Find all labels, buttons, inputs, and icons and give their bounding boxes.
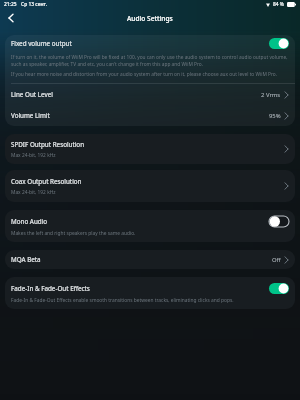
button[interactable]: Coax Output Resolution [5,170,295,202]
button[interactable]: Fixed volume output [5,35,295,51]
button[interactable]: Mono Audio [5,210,295,242]
staticText: Ср 13 сент. [21,1,47,8]
button[interactable]: Back [2,9,20,27]
button[interactable]: MQA Beta [5,250,295,269]
staticText: 84 % [273,1,285,8]
staticText: If turn on it, the volume of WiiM Pro wi… [11,54,293,68]
staticText: Makes the left and right speakers play t… [11,230,136,237]
staticText: Max 24-bit, 192 kHz [11,189,56,196]
staticText: Line Out Level [11,90,261,99]
button[interactable]: Line Out Level [5,84,295,105]
staticText: 21:25 [4,1,17,8]
button[interactable]: Fade-In & Fade-Out Effects [5,277,295,309]
button[interactable]: SPDIF Output Resolution [5,134,295,164]
staticText: Max 24-bit, 192 kHz [11,152,56,159]
button[interactable]: Volume Limit [5,105,295,126]
staticText: Off [272,256,281,264]
staticText: MQA Beta [11,255,272,264]
staticText: Coax Output Resolution [11,177,82,186]
staticText: SPDIF Output Resolution [11,140,85,149]
staticText: Fade-In & Fade-Out Effects [11,284,269,293]
staticText: If you hear more noise and distortion fr… [11,71,278,78]
staticText: Fade-In & Fade-Out Effects enable smooth… [11,297,234,304]
staticText: 2 Vrms [261,91,281,99]
staticText: 95% [269,112,281,120]
staticText: Fixed volume output [11,39,269,48]
staticText: Audio Settings [127,14,173,23]
staticText: Mono Audio [11,217,269,226]
staticText: Volume Limit [11,111,269,120]
